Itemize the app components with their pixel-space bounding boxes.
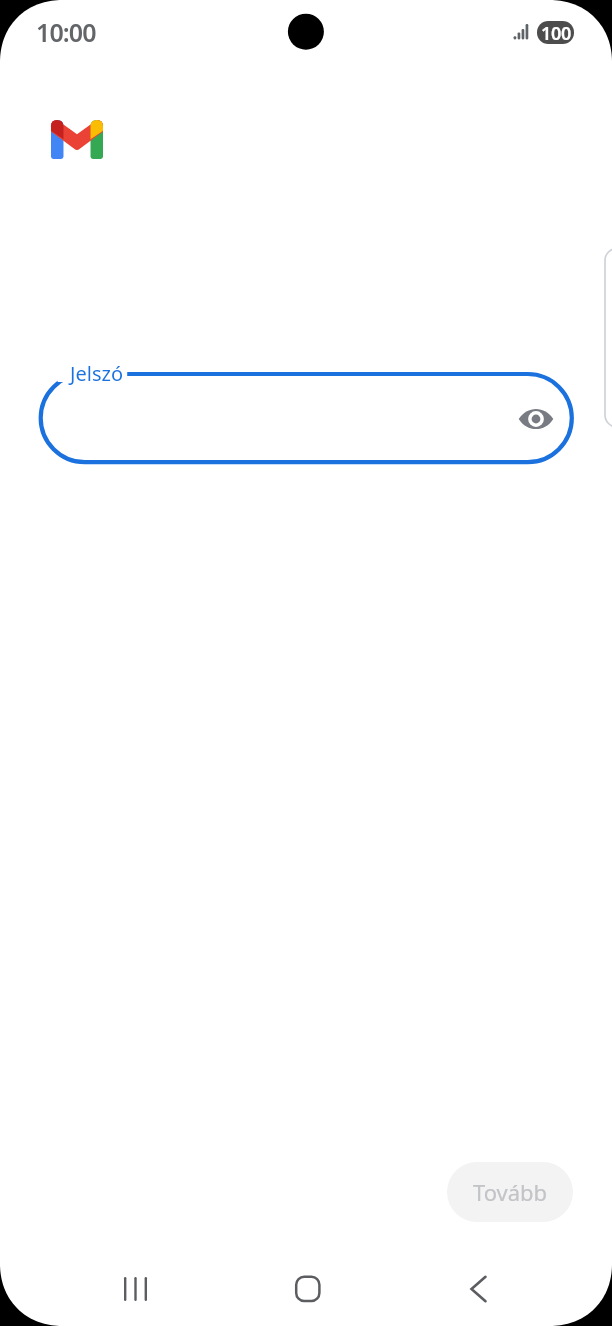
button[interactable]: Tovább xyxy=(447,1162,573,1222)
button[interactable]: Show password xyxy=(510,393,561,444)
staticText: 10:00 xyxy=(36,15,96,49)
button[interactable]: Back xyxy=(448,1259,508,1319)
staticText: 100 xyxy=(541,21,571,44)
button[interactable]: Home xyxy=(277,1259,337,1319)
button[interactable]: Recent apps xyxy=(105,1259,165,1319)
staticText: Jelszó xyxy=(70,360,123,387)
staticText: Tovább xyxy=(473,1177,548,1207)
